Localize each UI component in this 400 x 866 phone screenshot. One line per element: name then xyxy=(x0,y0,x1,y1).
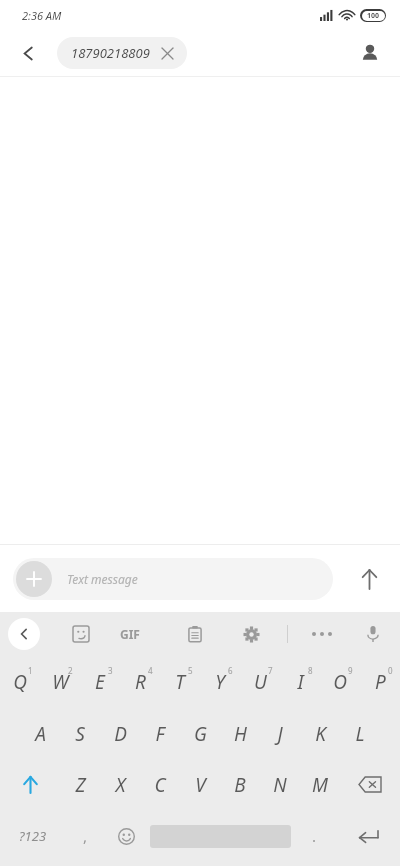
button[interactable]: Add attachment xyxy=(13,558,333,600)
staticText: B xyxy=(234,772,246,798)
button[interactable]: Add attachment xyxy=(16,561,52,597)
button[interactable]: A xyxy=(20,708,60,759)
button[interactable]: F xyxy=(140,708,180,759)
staticText: L xyxy=(355,721,365,747)
button[interactable]: W xyxy=(40,656,80,708)
button[interactable]: V xyxy=(180,759,220,810)
button[interactable]: T xyxy=(160,656,200,708)
button[interactable]: M xyxy=(300,759,340,810)
staticText: N xyxy=(273,772,287,798)
button[interactable]: ?123 xyxy=(0,810,65,862)
button[interactable]: Space xyxy=(147,810,294,862)
button[interactable]: Backspace xyxy=(340,759,400,810)
staticText: 1 xyxy=(28,665,33,676)
staticText: 7 xyxy=(268,665,273,676)
staticText: Q xyxy=(13,669,27,695)
staticText: 5 xyxy=(188,665,193,676)
staticText: P xyxy=(375,669,386,695)
button[interactable]: Q xyxy=(0,656,40,708)
staticText: Y xyxy=(215,669,225,695)
button[interactable]: More options xyxy=(305,617,339,651)
button[interactable]: Send xyxy=(348,558,390,600)
staticText: F xyxy=(155,721,165,747)
button[interactable]: J xyxy=(260,708,300,759)
button[interactable]: Y xyxy=(200,656,240,708)
staticText: S xyxy=(75,721,85,747)
staticText: D xyxy=(114,721,127,747)
staticText: O xyxy=(333,669,347,695)
staticText: U xyxy=(254,669,267,695)
staticText: W xyxy=(52,669,69,695)
staticText: 2 xyxy=(68,665,73,676)
button[interactable]: I xyxy=(280,656,320,708)
button[interactable]: N xyxy=(260,759,300,810)
button[interactable]: Back xyxy=(10,35,46,71)
button[interactable]: L xyxy=(340,708,380,759)
button[interactable]: GIF xyxy=(120,626,140,642)
button[interactable]: Shift xyxy=(0,759,60,810)
button[interactable]: G xyxy=(180,708,220,759)
button[interactable]: K xyxy=(300,708,340,759)
staticText: Z xyxy=(75,772,86,798)
button[interactable]: Emoji xyxy=(106,810,147,862)
button[interactable]: C xyxy=(140,759,180,810)
staticText: E xyxy=(95,669,105,695)
staticText: R xyxy=(135,669,146,695)
button[interactable]: H xyxy=(220,708,260,759)
staticText: X xyxy=(115,772,126,798)
staticText: A xyxy=(35,721,46,747)
staticText: I xyxy=(297,669,304,695)
staticText: 2:36 AM xyxy=(22,8,62,23)
button[interactable]: R xyxy=(120,656,160,708)
staticText: 9 xyxy=(348,665,353,676)
staticText: H xyxy=(234,721,247,747)
button[interactable]: Contact xyxy=(352,35,388,71)
staticText: ?123 xyxy=(19,827,47,845)
button[interactable]: , xyxy=(65,810,106,862)
button[interactable]: Clipboard xyxy=(178,617,212,651)
button[interactable]: P xyxy=(360,656,400,708)
button[interactable]: S xyxy=(60,708,100,759)
staticText: 8 xyxy=(308,665,313,676)
button[interactable]: X xyxy=(100,759,140,810)
staticText: T xyxy=(175,669,185,695)
button[interactable]: E xyxy=(80,656,120,708)
button[interactable]: Stickers xyxy=(64,617,98,651)
button[interactable]: 18790218809 xyxy=(57,37,187,69)
staticText: 100 xyxy=(367,11,380,21)
staticText: Text message xyxy=(67,571,138,587)
staticText: , xyxy=(83,826,88,846)
staticText: C xyxy=(154,772,166,798)
staticText: . xyxy=(312,826,317,846)
staticText: 18790218809 xyxy=(71,44,150,62)
button[interactable]: Voice input xyxy=(356,617,390,651)
button[interactable]: B xyxy=(220,759,260,810)
button[interactable]: O xyxy=(320,656,360,708)
button[interactable]: D xyxy=(100,708,140,759)
staticText: V xyxy=(195,772,206,798)
button[interactable]: Settings xyxy=(234,617,268,651)
staticText: K xyxy=(315,721,326,747)
staticText: G xyxy=(194,721,207,747)
staticText: M xyxy=(312,772,328,798)
button[interactable]: Collapse toolbar xyxy=(8,618,40,650)
staticText: 4 xyxy=(148,665,153,676)
button[interactable]: Enter xyxy=(335,810,400,862)
staticText: J xyxy=(277,721,283,747)
button[interactable]: Z xyxy=(60,759,100,810)
staticText: 3 xyxy=(108,665,113,676)
staticText: 6 xyxy=(228,665,233,676)
staticText: 0 xyxy=(388,665,393,676)
button[interactable]: U xyxy=(240,656,280,708)
